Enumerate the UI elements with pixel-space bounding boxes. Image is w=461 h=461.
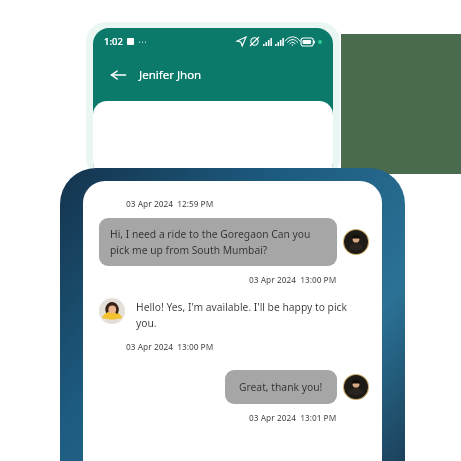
button[interactable]: Hi, I need a ride to the Goregaon Can yo… (99, 218, 337, 266)
staticText: Jenifer Jhon (139, 67, 202, 83)
staticText: Hello! Yes, I'm available. I'll be happy… (136, 300, 369, 330)
staticText: 03 Apr 2024 13:00 PM (249, 274, 337, 285)
staticText: Great, thank you! (239, 380, 323, 394)
staticText: 1:02 (104, 35, 123, 48)
button[interactable]: Back (106, 63, 130, 87)
staticText: ⋯ (138, 37, 147, 47)
staticText: 03 Apr 2024 12:59 PM (126, 198, 214, 209)
staticText: 03 Apr 2024 13:01 PM (249, 412, 337, 423)
button[interactable]: Great, thank you! (225, 370, 337, 404)
staticText: 03 Apr 2024 13:00 PM (126, 341, 214, 352)
staticText: Hi, I need a ride to the Goregaon Can yo… (110, 227, 326, 257)
